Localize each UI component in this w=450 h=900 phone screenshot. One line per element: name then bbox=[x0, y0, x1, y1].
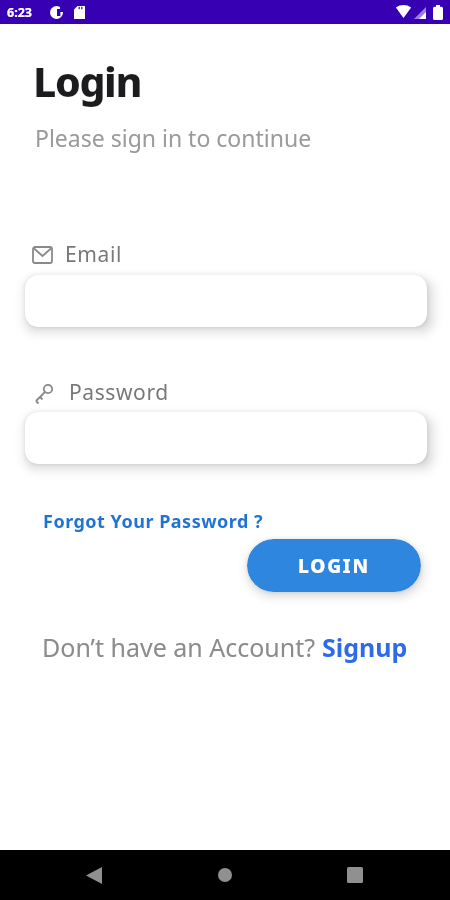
button[interactable]: LOGIN bbox=[247, 539, 421, 592]
button[interactable] bbox=[218, 868, 232, 882]
button[interactable]: Forgot Your Password ? bbox=[43, 509, 264, 534]
staticText: LOGIN bbox=[298, 553, 370, 579]
staticText: Login bbox=[33, 53, 142, 109]
staticText: Password bbox=[69, 378, 169, 407]
button[interactable]: Signup bbox=[322, 630, 408, 664]
staticText: Don’t have an Account? bbox=[42, 630, 322, 664]
button[interactable] bbox=[86, 867, 102, 884]
staticText: Email bbox=[65, 240, 122, 269]
staticText: 6:23 bbox=[7, 4, 32, 21]
button[interactable] bbox=[347, 867, 363, 883]
staticText: Please sign in to continue bbox=[35, 122, 312, 153]
